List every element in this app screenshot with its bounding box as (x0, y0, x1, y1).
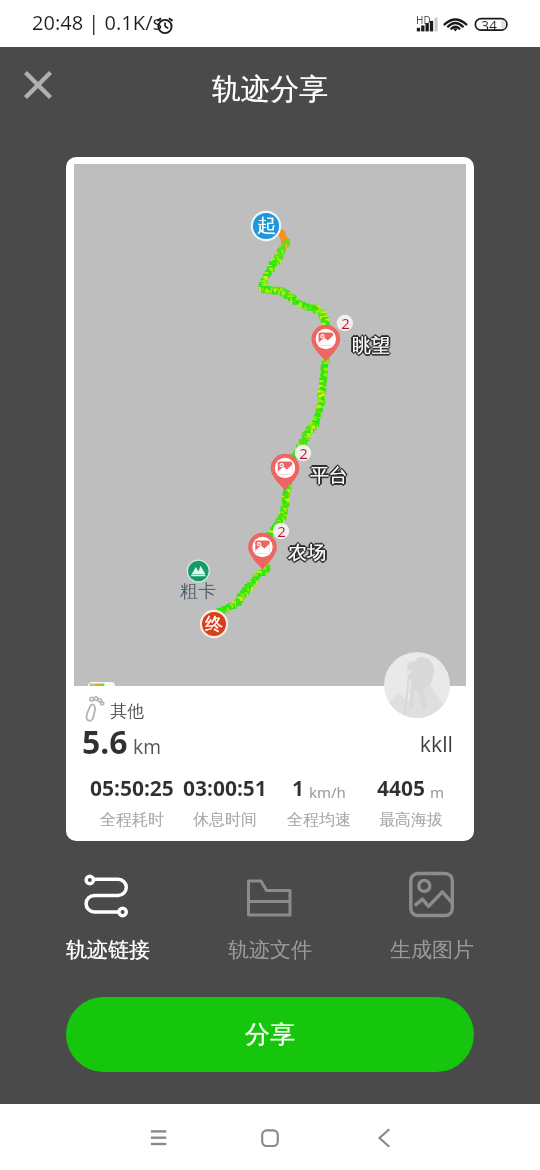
button[interactable]: Back (358, 1113, 406, 1161)
staticText: 粗卡 (180, 580, 216, 603)
staticText: 平台 (311, 463, 349, 487)
staticText: 农场 (286, 541, 324, 565)
button[interactable]: Recent apps (134, 1113, 182, 1161)
button[interactable]: Home (246, 1113, 294, 1161)
staticText: 农场 (287, 541, 325, 565)
staticText: 2 (299, 443, 308, 463)
staticText: 5.6 (82, 720, 128, 764)
staticText: 终 (205, 613, 223, 636)
staticText: HD (416, 13, 431, 27)
staticText: km (133, 734, 161, 760)
staticText: 平台 (310, 464, 348, 488)
button[interactable]: Close (13, 60, 63, 110)
staticText: 休息时间 (193, 810, 257, 830)
staticText: 平台 (308, 464, 346, 488)
staticText: 分享 (245, 1019, 295, 1050)
staticText: 最高海拔 (379, 810, 443, 830)
staticText: 平台 (309, 465, 347, 489)
staticText: 眺望 (352, 335, 390, 359)
staticText: 农场 (288, 540, 326, 564)
staticText: 2 (277, 521, 286, 541)
staticText: 平台 (310, 463, 348, 487)
staticText: 平台 (310, 466, 348, 490)
staticText: km/h (309, 782, 346, 802)
button[interactable]: 分享 (66, 997, 474, 1072)
staticText: 眺望 (354, 334, 392, 358)
staticText: 眺望 (352, 333, 390, 357)
staticText: m (430, 782, 445, 802)
staticText: 03:00:51 (183, 774, 267, 803)
staticText: 眺望 (353, 335, 391, 359)
staticText: 20:48 | 0.1K/s (32, 9, 163, 36)
staticText: 眺望 (350, 334, 388, 358)
staticText: 农场 (289, 540, 327, 564)
staticText: 眺望 (351, 334, 389, 358)
staticText: 平台 (310, 462, 348, 486)
staticText: 眺望 (351, 335, 389, 359)
staticText: 轨迹文件 (228, 937, 312, 963)
staticText: 平台 (309, 464, 347, 488)
staticText: 农场 (288, 541, 326, 565)
staticText: kkll (353, 730, 453, 759)
staticText: 全程均速 (287, 810, 351, 830)
staticText: 4405 (377, 774, 426, 803)
staticText: 农场 (287, 542, 325, 566)
staticText: 05:50:25 (90, 774, 174, 803)
button[interactable]: 轨迹文件 (189, 872, 351, 970)
staticText: 1 (292, 774, 305, 803)
staticText: 平台 (311, 464, 349, 488)
staticText: 全程耗时 (100, 810, 164, 830)
staticText: 平台 (310, 465, 348, 489)
staticText: 农场 (287, 540, 325, 564)
staticText: 眺望 (353, 334, 391, 358)
staticText: 眺望 (352, 334, 390, 358)
button[interactable]: 生成图片 (351, 872, 513, 970)
staticText: 平台 (309, 463, 347, 487)
staticText: 农场 (289, 542, 327, 566)
staticText: 眺望 (352, 336, 390, 360)
staticText: 农场 (288, 539, 326, 563)
staticText: 农场 (288, 542, 326, 566)
staticText: 眺望 (352, 332, 390, 356)
staticText: 平台 (312, 464, 350, 488)
staticText: 眺望 (353, 333, 391, 357)
staticText: 眺望 (351, 333, 389, 357)
staticText: 农场 (290, 541, 328, 565)
staticText: 轨迹链接 (66, 937, 150, 963)
staticText: 农场 (289, 541, 327, 565)
staticText: 其他 (110, 701, 144, 722)
button[interactable]: 轨迹链接 (27, 872, 189, 970)
staticText: 生成图片 (390, 937, 474, 963)
staticText: 2 (341, 313, 350, 333)
staticText: 农场 (288, 543, 326, 567)
staticText: 轨迹分享 (212, 71, 328, 108)
staticText: 34 (481, 16, 498, 35)
staticText: 起 (257, 214, 276, 238)
staticText: 平台 (311, 465, 349, 489)
